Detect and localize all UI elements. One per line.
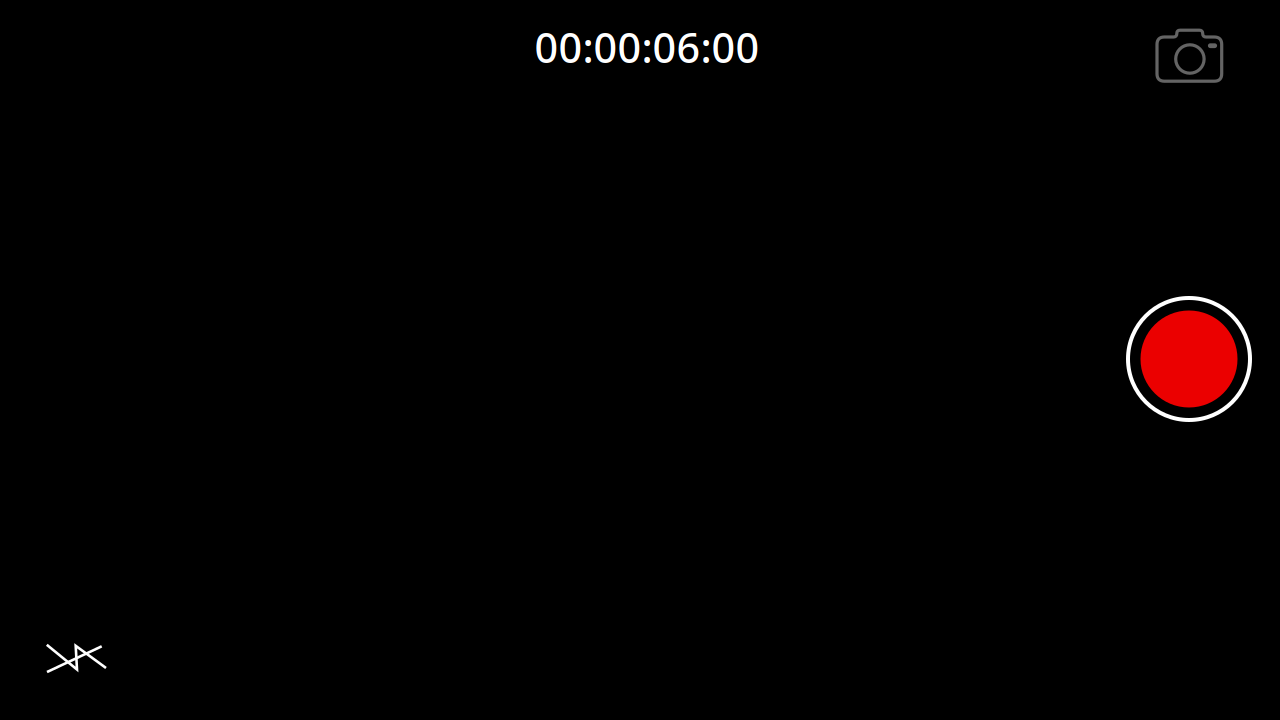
button[interactable]: Flash off: [34, 633, 118, 683]
button[interactable]: Stop recording: [1124, 294, 1254, 424]
staticText: 00:00:06:00: [534, 20, 759, 74]
button[interactable]: Switch to photo mode: [1145, 18, 1233, 94]
